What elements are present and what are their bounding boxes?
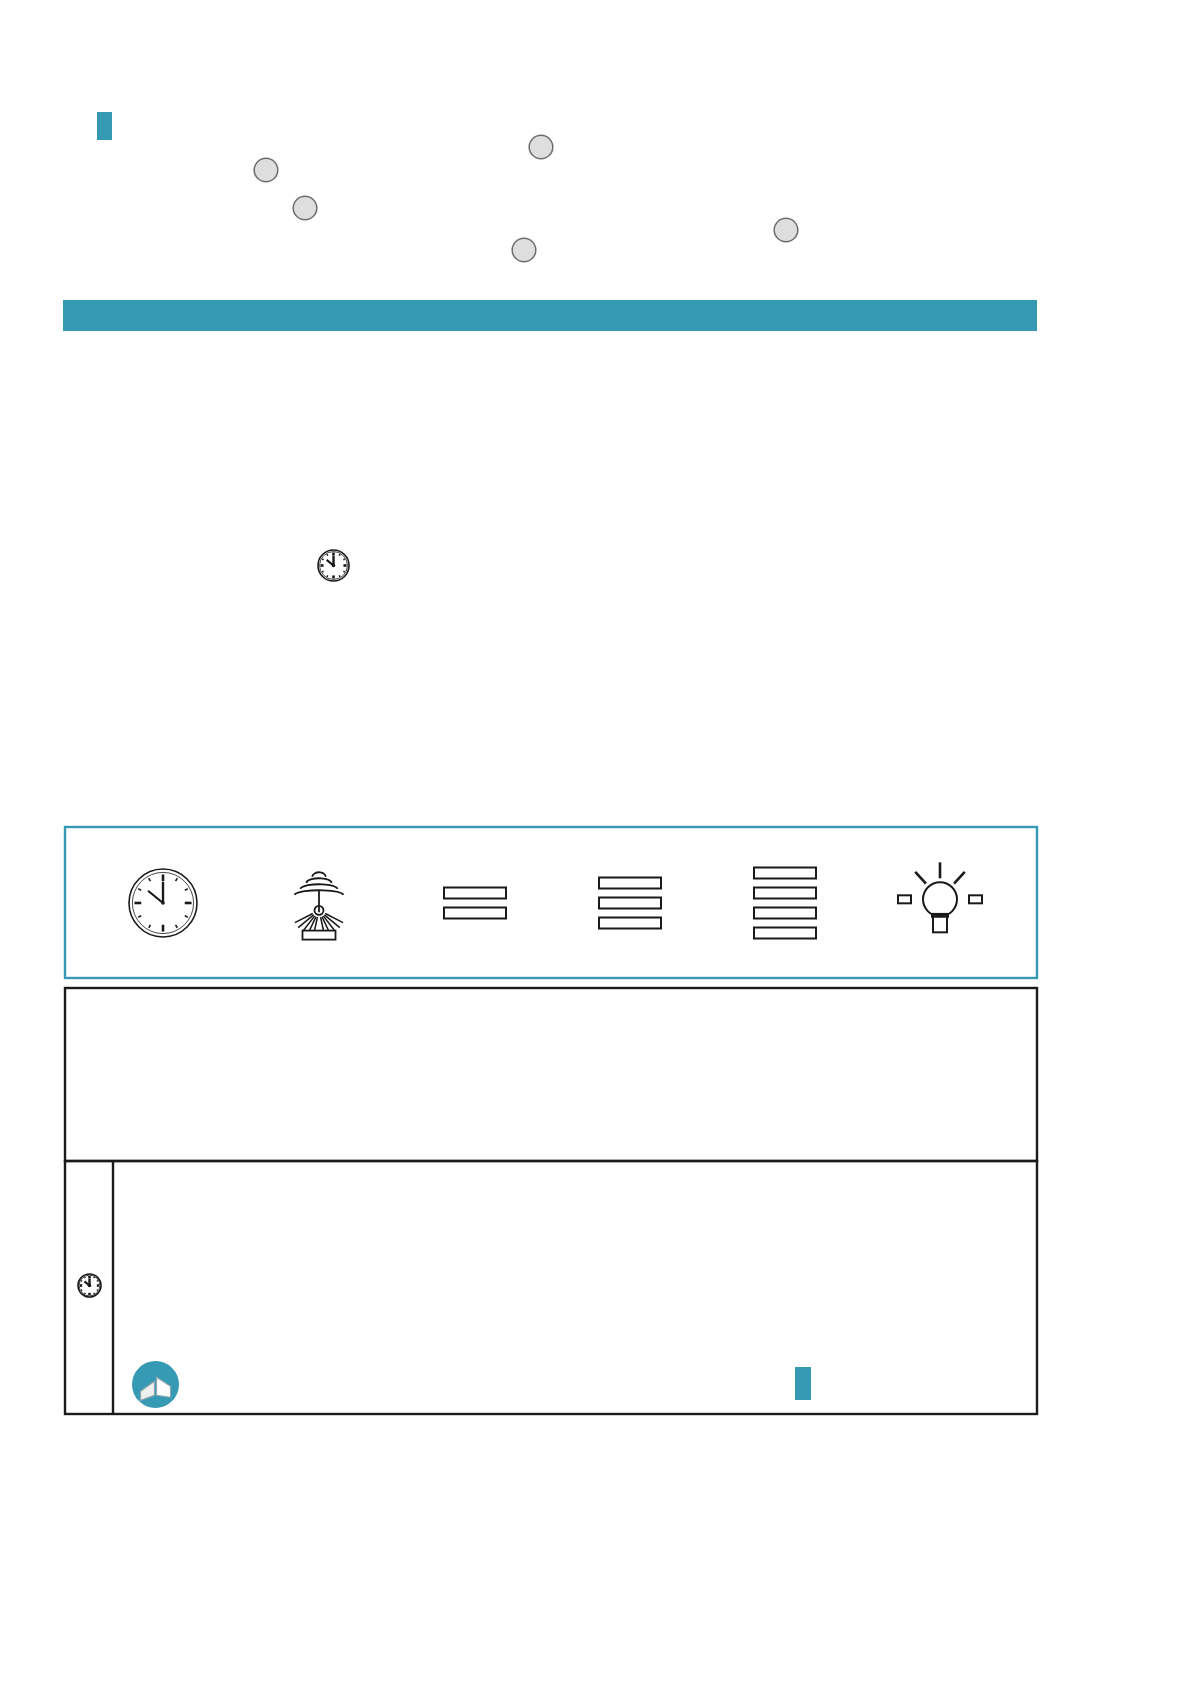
button[interactable]: Open book: [132, 1361, 179, 1408]
button[interactable]: Clock: [85, 848, 241, 958]
button[interactable]: Clock: [317, 549, 350, 582]
button[interactable]: Four line list: [707, 848, 862, 958]
button[interactable]: Two line list: [397, 848, 552, 958]
button[interactable]: Light bulb: [862, 848, 1017, 958]
button[interactable]: Clock: [77, 1273, 102, 1298]
button[interactable]: Signal: [241, 848, 397, 958]
button[interactable]: Three line list: [552, 848, 707, 958]
